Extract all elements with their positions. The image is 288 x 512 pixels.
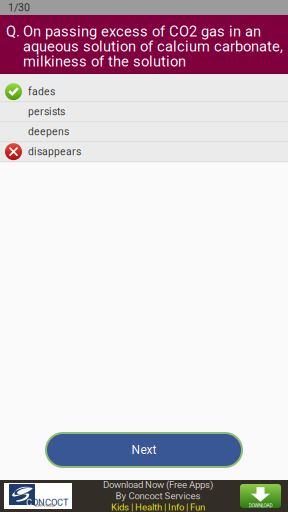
staticText: fades <box>28 86 55 98</box>
staticText: ONCOCT <box>32 497 69 508</box>
staticText: disappears <box>28 146 81 158</box>
staticText: Download Now (Free Apps) <box>103 479 213 490</box>
staticText: deepens <box>28 126 69 138</box>
staticText: persists <box>28 106 65 118</box>
staticText: SERVICES <box>35 503 55 508</box>
staticText: Kids | Health | Info | Fun <box>111 502 205 512</box>
staticText: Q. <box>6 23 20 40</box>
button[interactable]: Next <box>45 432 243 468</box>
button[interactable]: disappears <box>0 142 288 161</box>
staticText: Next <box>131 443 156 457</box>
button[interactable]: persists <box>0 102 288 121</box>
button[interactable]: fades <box>0 82 288 101</box>
staticText: 1/30 <box>8 1 30 14</box>
button[interactable]: deepens <box>0 122 288 141</box>
staticText: By Concoct Services <box>115 490 200 502</box>
staticText: C <box>26 497 32 508</box>
staticText: DOWNLOAD <box>248 503 272 508</box>
staticText: On passing excess of CO2 gas in an aqueo… <box>23 23 283 70</box>
